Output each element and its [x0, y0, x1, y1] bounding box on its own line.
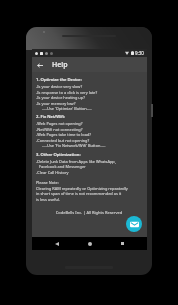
button[interactable]: Recent apps	[115, 237, 129, 250]
staticText: -Is your device very slow?	[36, 84, 83, 89]
staticText: -Web Pages take time to load?	[36, 132, 91, 137]
staticText: CodeBells Inc. | All Rights Reserved	[32, 210, 146, 215]
staticText: -Net/Wifi not connecting?	[36, 127, 83, 132]
staticText: -Web Pages not opening?	[36, 121, 83, 126]
staticText: -Delete Junk Data from Apps like WhatsAp…	[36, 159, 116, 164]
staticText: 3. Other Optimization:	[36, 152, 81, 158]
staticText: ----Use 'Optimize' Button----	[36, 106, 92, 111]
staticText: in short span of time is not recommended…	[36, 191, 122, 196]
staticText: 9:30	[135, 50, 144, 56]
staticText: Facebook and Messenger	[36, 164, 86, 169]
button[interactable]: Home	[83, 237, 97, 250]
staticText: -Clear Call History	[36, 170, 69, 175]
staticText: ----Use 'Fix Network/Wifi' Button----	[36, 143, 106, 148]
staticText: -Is your memory low?	[36, 101, 76, 106]
button[interactable]: Contact support by email	[126, 216, 142, 232]
staticText: Please Note:	[36, 180, 59, 185]
staticText: Clearing RAM repeatedly or Optimizing re…	[36, 186, 128, 191]
staticText: -Is your device heating up?	[36, 95, 85, 100]
staticText: 2. Fix Net/Wifi:	[36, 114, 66, 120]
staticText: is less useful.	[36, 197, 61, 202]
button[interactable]: Back	[50, 237, 64, 250]
staticText: 1. Optimize the Device:	[36, 77, 82, 83]
staticText: -Connected but not opening?	[36, 138, 90, 143]
button[interactable]: Back	[34, 59, 46, 71]
staticText: Help	[52, 60, 68, 70]
staticText: -Is response to a click is very late?	[36, 90, 98, 95]
